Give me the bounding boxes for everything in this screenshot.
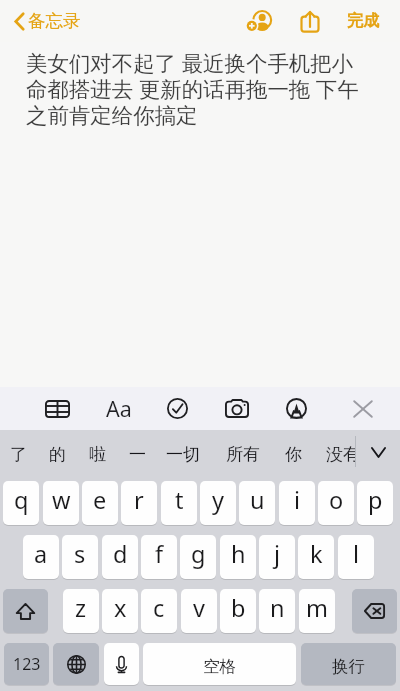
staticText: k <box>310 538 323 570</box>
staticText: s <box>74 538 86 570</box>
button[interactable]: f <box>141 535 177 579</box>
button[interactable]: Share <box>295 0 325 42</box>
button[interactable]: g <box>180 535 216 579</box>
staticText: n <box>270 592 285 624</box>
staticText: o <box>329 484 344 516</box>
staticText: q <box>14 484 29 516</box>
button[interactable]: y <box>200 481 236 525</box>
staticText: x <box>114 592 127 624</box>
staticText: i <box>294 484 301 516</box>
staticText: 备忘录 <box>28 10 81 32</box>
button[interactable]: m <box>299 589 335 633</box>
button[interactable]: j <box>259 535 295 579</box>
staticText: u <box>250 484 265 516</box>
staticText: 换行 <box>332 656 365 677</box>
staticText: w <box>52 484 71 516</box>
staticText: e <box>93 484 107 516</box>
button[interactable]: 一 <box>115 430 159 479</box>
button[interactable]: x <box>102 589 138 633</box>
button[interactable]: q <box>3 481 39 525</box>
button[interactable]: b <box>220 589 256 633</box>
button[interactable]: u <box>239 481 275 525</box>
button[interactable]: 一切 <box>161 430 205 479</box>
button[interactable]: n <box>259 589 295 633</box>
button[interactable]: z <box>63 589 99 633</box>
button[interactable]: Backspace <box>352 589 397 633</box>
button[interactable]: Close keyboard <box>342 387 384 430</box>
staticText: 一 <box>129 444 146 465</box>
staticText: j <box>274 538 281 570</box>
button[interactable]: Shift <box>3 589 48 633</box>
button[interactable]: e <box>82 481 118 525</box>
staticText: 没有 <box>326 444 360 465</box>
button[interactable]: w <box>43 481 79 525</box>
button[interactable]: d <box>102 535 138 579</box>
button[interactable]: Table <box>36 387 78 430</box>
staticText: h <box>231 538 246 570</box>
button[interactable]: 完成 <box>340 0 386 42</box>
button[interactable]: 所有 <box>221 430 265 479</box>
button[interactable]: k <box>298 535 334 579</box>
staticText: 美女们对不起了 最近换个手机把小命都搭进去 更新的话再拖一拖 下午之前肯定给你搞… <box>26 48 362 129</box>
staticText: r <box>134 484 144 516</box>
staticText: g <box>191 538 206 570</box>
staticText: a <box>34 538 48 570</box>
button[interactable]: c <box>141 589 177 633</box>
button[interactable]: 换行 <box>301 643 396 685</box>
button[interactable]: l <box>338 535 374 579</box>
staticText: c <box>153 592 165 624</box>
staticText: z <box>75 592 87 624</box>
button[interactable]: 没有 <box>321 430 365 479</box>
button[interactable]: 你 <box>271 430 315 479</box>
button[interactable]: Camera <box>216 387 258 430</box>
button[interactable]: 了 <box>0 430 40 479</box>
staticText: p <box>368 484 383 516</box>
staticText: f <box>155 538 164 570</box>
button[interactable]: Text format <box>98 387 140 430</box>
button[interactable]: 123 <box>4 643 49 685</box>
staticText: d <box>113 538 128 570</box>
staticText: l <box>353 538 360 570</box>
staticText: 的 <box>49 444 66 465</box>
button[interactable]: 啦 <box>75 430 119 479</box>
staticText: Aa <box>106 394 132 423</box>
button[interactable]: t <box>161 481 197 525</box>
staticText: 完成 <box>347 11 379 31</box>
staticText: y <box>212 484 224 516</box>
button[interactable]: Dictate <box>104 643 139 685</box>
staticText: 123 <box>13 653 41 675</box>
staticText: b <box>231 592 246 624</box>
button[interactable]: More suggestions <box>365 428 392 477</box>
button[interactable]: Checklist <box>156 387 198 430</box>
staticText: 啦 <box>89 444 106 465</box>
button[interactable]: a <box>23 535 59 579</box>
button[interactable]: Switch language <box>53 643 99 685</box>
button[interactable]: Add people <box>242 0 276 42</box>
button[interactable]: s <box>62 535 98 579</box>
button[interactable]: h <box>220 535 256 579</box>
staticText: v <box>193 592 205 624</box>
button[interactable]: 空格 <box>143 643 296 685</box>
button[interactable]: v <box>181 589 217 633</box>
staticText: 了 <box>10 444 27 465</box>
staticText: m <box>306 592 328 624</box>
staticText: 所有 <box>226 444 260 465</box>
button[interactable]: o <box>318 481 354 525</box>
button[interactable]: i <box>279 481 315 525</box>
button[interactable]: 的 <box>35 430 79 479</box>
button[interactable]: p <box>357 481 393 525</box>
staticText: 你 <box>285 444 302 465</box>
button[interactable]: r <box>121 481 157 525</box>
button[interactable]: Markup <box>275 387 317 430</box>
staticText: 一切 <box>166 444 200 465</box>
button[interactable]: 备忘录 <box>10 0 87 42</box>
staticText: t <box>175 484 184 516</box>
staticText: 空格 <box>203 656 236 677</box>
